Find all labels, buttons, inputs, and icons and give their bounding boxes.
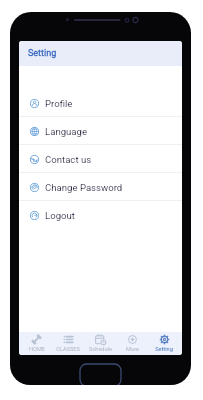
button[interactable]: Setting	[148, 332, 180, 355]
staticText: More	[126, 346, 139, 353]
staticText: Schedule	[89, 346, 112, 353]
button[interactable]: CLASSES	[52, 332, 84, 355]
staticText: HOME	[29, 346, 45, 353]
staticText: Logout	[45, 210, 75, 221]
button[interactable]: More	[116, 332, 148, 355]
button[interactable]: Change Password	[19, 173, 182, 201]
staticText: Change Password	[45, 182, 123, 193]
button[interactable]: Profile	[19, 89, 182, 117]
button[interactable]: Logout	[19, 201, 182, 229]
button[interactable]: HOME	[21, 332, 52, 355]
staticText: Language	[45, 126, 88, 137]
staticText: Setting	[155, 346, 173, 353]
button[interactable]: Language	[19, 117, 182, 145]
staticText: Setting	[28, 48, 57, 59]
staticText: CLASSES	[56, 346, 80, 353]
staticText: Contact us	[45, 154, 92, 165]
button[interactable]: Schedule	[84, 332, 116, 355]
staticText: Profile	[45, 98, 73, 109]
button[interactable]: Contact us	[19, 145, 182, 173]
